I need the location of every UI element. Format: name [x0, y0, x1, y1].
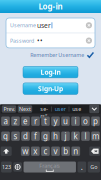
button[interactable]: Next keyboard	[13, 162, 22, 172]
staticText: g	[43, 131, 48, 141]
staticText: s	[13, 131, 17, 141]
staticText: user	[55, 105, 66, 113]
staticText: 123	[2, 163, 11, 171]
button[interactable]: l	[81, 131, 90, 141]
staticText: f	[34, 131, 37, 141]
staticText: z	[13, 116, 17, 126]
staticText: r	[34, 116, 37, 126]
staticText: Log-in	[40, 68, 60, 77]
button[interactable]: 123	[1, 161, 12, 172]
staticText: Remember Username	[30, 51, 84, 58]
button[interactable]: y	[51, 116, 60, 126]
button[interactable]: k	[71, 131, 80, 141]
staticText: l	[84, 131, 86, 141]
button[interactable]: z	[11, 116, 20, 126]
button[interactable]: x	[31, 146, 40, 156]
staticText: e	[23, 116, 28, 126]
staticText: Sign-Up	[38, 84, 63, 93]
staticText: Français	[39, 162, 60, 169]
staticText: t	[44, 116, 47, 126]
staticText: h	[53, 131, 58, 141]
button[interactable]: Go	[88, 161, 100, 172]
button[interactable]: e	[21, 116, 30, 126]
button[interactable]: Remember Username	[0, 49, 101, 61]
staticText: p	[93, 116, 98, 126]
staticText: v	[53, 146, 57, 156]
staticText: x	[33, 146, 37, 156]
button[interactable]: o	[81, 116, 90, 126]
staticText: Next	[19, 105, 31, 113]
button[interactable]: t	[41, 116, 50, 126]
button[interactable]: Delete	[89, 146, 100, 156]
button[interactable]: Prev.	[2, 105, 16, 113]
staticText: n	[73, 146, 78, 156]
staticText: y	[53, 116, 57, 126]
staticText: ••	[37, 36, 43, 45]
button[interactable]: p	[91, 116, 100, 126]
staticText: a	[3, 116, 7, 126]
button[interactable]: Sign-Up	[23, 83, 78, 94]
staticText: o	[83, 116, 88, 126]
staticText: Log-in	[38, 1, 62, 12]
button[interactable]: Next	[18, 105, 32, 113]
staticText: q	[3, 131, 8, 141]
button[interactable]: Space	[24, 161, 76, 172]
staticText: c	[43, 146, 47, 156]
staticText: Go	[90, 163, 97, 171]
button[interactable]: r	[31, 116, 40, 126]
staticText: use	[72, 105, 81, 113]
staticText: .	[81, 162, 83, 172]
staticText: u	[63, 116, 68, 126]
staticText: b	[63, 146, 68, 156]
staticText: i	[74, 116, 76, 126]
button[interactable]: d	[21, 131, 30, 141]
button[interactable]: c	[41, 146, 50, 156]
staticText: Username	[10, 22, 36, 29]
button[interactable]: j	[61, 131, 70, 141]
button[interactable]: s	[11, 131, 20, 141]
staticText: j	[64, 131, 66, 141]
button[interactable]: v	[51, 146, 60, 156]
button[interactable]: .	[77, 161, 86, 172]
button[interactable]: a	[1, 116, 10, 126]
button[interactable]: n	[71, 146, 80, 156]
staticText: Password	[10, 37, 34, 44]
button[interactable]: u	[61, 116, 70, 126]
staticText: w	[22, 146, 28, 156]
button[interactable]: q	[1, 131, 10, 141]
button[interactable]: w	[21, 146, 30, 156]
button[interactable]: h	[51, 131, 60, 141]
staticText: m	[92, 131, 99, 141]
staticText: user	[37, 21, 51, 30]
button[interactable]: i	[71, 116, 80, 126]
button[interactable]: Shift	[1, 146, 12, 156]
staticText: d	[23, 131, 28, 141]
button[interactable]: Hide predictions	[89, 105, 99, 113]
button[interactable]: Log-in	[23, 66, 78, 78]
staticText: “users”	[40, 98, 48, 120]
button[interactable]: m	[91, 131, 100, 141]
button[interactable]: g	[41, 131, 50, 141]
button[interactable]: b	[61, 146, 70, 156]
staticText: Prev.	[3, 105, 14, 113]
staticText: k	[73, 131, 77, 141]
button[interactable]: f	[31, 131, 40, 141]
